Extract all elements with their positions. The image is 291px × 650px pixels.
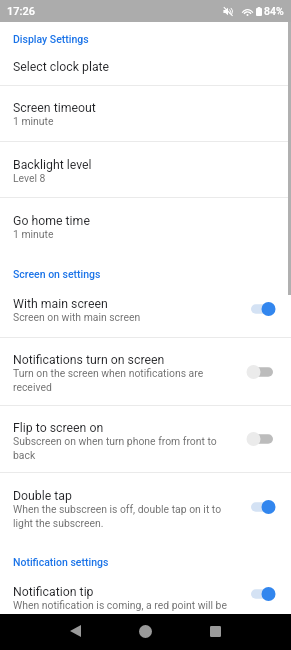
button[interactable]: On bbox=[247, 497, 277, 517]
button[interactable]: Off bbox=[247, 429, 277, 449]
button[interactable]: Double tap bbox=[0, 473, 291, 541]
button[interactable]: Go home time bbox=[0, 198, 291, 254]
button[interactable]: Notification tip bbox=[0, 573, 291, 614]
button[interactable]: Backlight level bbox=[0, 142, 291, 198]
button[interactable]: Recent apps bbox=[198, 614, 232, 648]
staticText: Display Settings bbox=[13, 33, 89, 45]
staticText: With main screen bbox=[13, 297, 108, 311]
button[interactable]: On bbox=[247, 584, 277, 604]
staticText: Turn on the screen when notifications ar… bbox=[13, 367, 234, 394]
staticText: When the subscreen is off, double tap on… bbox=[13, 503, 234, 530]
button[interactable]: Back bbox=[58, 614, 92, 648]
button[interactable]: Off bbox=[247, 362, 277, 382]
staticText: Notification tip bbox=[13, 585, 94, 599]
staticText: When notification is coming, a red point… bbox=[13, 599, 227, 611]
button[interactable]: Flip to screen on bbox=[0, 406, 291, 473]
staticText: Notifications turn on screen bbox=[13, 353, 165, 367]
staticText: 1 minute bbox=[13, 115, 54, 127]
staticText: Subscreen on when turn phone from front … bbox=[13, 435, 234, 462]
staticText: 1 minute bbox=[13, 228, 54, 240]
button[interactable]: Notifications turn on screen bbox=[0, 338, 291, 406]
button[interactable]: Home bbox=[128, 614, 162, 648]
staticText: Notification settings bbox=[13, 556, 109, 568]
button[interactable]: Select clock plate bbox=[0, 53, 291, 86]
button[interactable]: With main screen bbox=[0, 281, 291, 338]
staticText: Flip to screen on bbox=[13, 421, 104, 435]
staticText: 84% bbox=[264, 5, 284, 17]
staticText: Level 8 bbox=[13, 172, 46, 184]
staticText: Select clock plate bbox=[13, 60, 110, 74]
staticText: 17:26 bbox=[7, 5, 35, 18]
staticText: Screen on with main screen bbox=[13, 311, 141, 323]
staticText: Backlight level bbox=[13, 158, 92, 172]
staticText: Go home time bbox=[13, 214, 90, 228]
button[interactable]: Screen timeout bbox=[0, 86, 291, 142]
staticText: Screen timeout bbox=[13, 101, 96, 115]
staticText: Screen on settings bbox=[13, 268, 101, 280]
button[interactable]: On bbox=[247, 299, 277, 319]
staticText: Double tap bbox=[13, 489, 72, 503]
